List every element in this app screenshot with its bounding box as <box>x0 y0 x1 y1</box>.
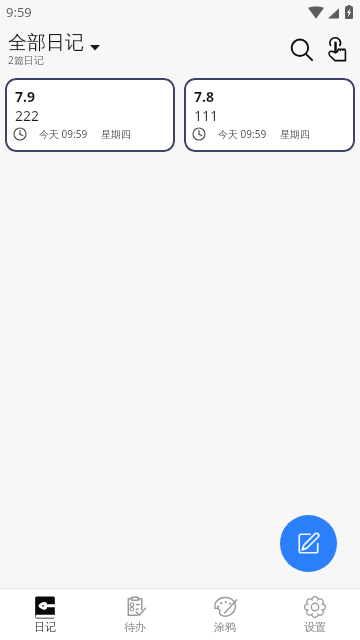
staticText: 今天 09:59 <box>39 127 88 141</box>
button[interactable]: 7.8 <box>184 78 355 152</box>
staticText: 今天 09:59 <box>218 127 267 141</box>
staticText: 星期四 <box>101 128 131 141</box>
staticText: 星期四 <box>280 128 310 141</box>
staticText: 待办 <box>124 620 146 634</box>
staticText: 7.8 <box>194 87 214 106</box>
staticText: 全部日记 <box>8 31 84 55</box>
button[interactable]: 7.9 <box>5 78 175 152</box>
button[interactable]: 待办 <box>90 589 180 640</box>
button[interactable]: 涂鸦 <box>180 589 270 640</box>
staticText: 111 <box>194 106 219 125</box>
button[interactable]: 日记 <box>0 589 90 640</box>
staticText: 日记 <box>34 620 56 634</box>
staticText: 涂鸦 <box>214 620 236 634</box>
button[interactable]: New diary <box>280 515 337 572</box>
staticText: 7.9 <box>15 87 35 106</box>
staticText: 设置 <box>304 620 326 634</box>
button[interactable]: 全部日记 <box>8 24 100 69</box>
staticText: 222 <box>15 106 40 125</box>
staticText: 2篇日记 <box>8 53 44 67</box>
button[interactable]: Search <box>275 29 315 73</box>
button[interactable]: 设置 <box>270 589 360 640</box>
staticText: 9:59 <box>6 3 32 21</box>
button[interactable]: Gestures <box>315 29 355 73</box>
